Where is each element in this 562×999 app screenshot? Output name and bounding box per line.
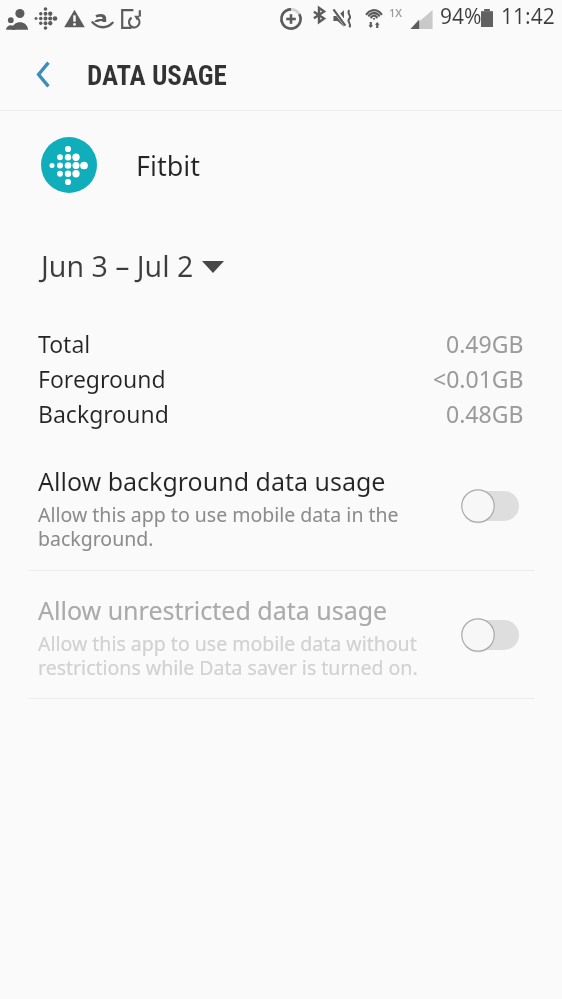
button[interactable]: Allow unrestricted data usage [0,591,562,695]
staticText: 0.48GB [446,398,524,429]
staticText: Allow this app to use mobile data in the… [38,501,399,552]
staticText: 11:42 [501,2,555,31]
staticText: 1X [389,5,403,20]
staticText: <0.01GB [433,363,524,394]
button[interactable]: Jun 3 – Jul 2 [41,247,224,286]
staticText: a [93,1,108,22]
button[interactable]: Toggle switch [461,489,521,523]
staticText: Total [38,328,91,359]
staticText: Allow unrestricted data usage [38,593,388,627]
button[interactable]: Back [14,42,72,109]
staticText: 0.49GB [446,328,524,359]
button[interactable]: Toggle switch [461,618,521,652]
staticText: 94% [440,2,482,31]
staticText: Fitbit [136,147,201,184]
staticText: Foreground [38,363,166,394]
staticText: Background [38,398,169,429]
staticText: Allow this app to use mobile data withou… [38,630,418,681]
staticText: Allow background data usage [38,464,386,498]
button[interactable]: Allow background data usage [0,462,562,566]
staticText: Jun 3 – Jul 2 [41,247,194,286]
staticText: DATA USAGE [87,60,227,92]
